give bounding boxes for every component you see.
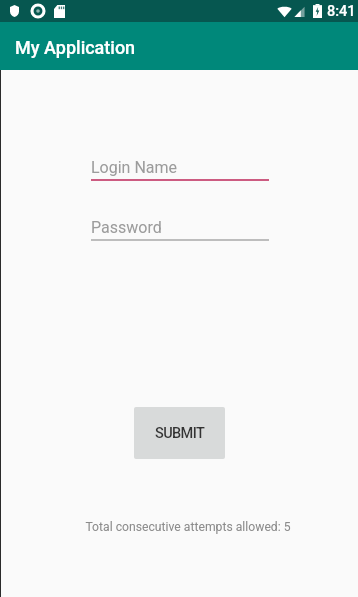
other: Battery charging bbox=[313, 4, 322, 18]
staticText: Total consecutive attempts allowed: 5 bbox=[85, 520, 291, 534]
button[interactable]: Password bbox=[91, 218, 269, 241]
staticText: Login Name bbox=[91, 158, 178, 177]
other: Mobile signal bbox=[294, 6, 305, 18]
staticText: SUBMIT bbox=[155, 425, 205, 442]
button[interactable]: Login Name bbox=[91, 158, 269, 181]
other: Storage notification bbox=[54, 5, 65, 18]
button[interactable]: SUBMIT bbox=[134, 407, 225, 459]
staticText: 8:41 bbox=[327, 3, 356, 20]
staticText: Password bbox=[91, 218, 162, 237]
other: Security notification bbox=[10, 5, 19, 17]
other: Sync notification bbox=[32, 5, 44, 17]
staticText: My Application bbox=[15, 37, 136, 58]
other: Wi-Fi bbox=[277, 5, 292, 18]
